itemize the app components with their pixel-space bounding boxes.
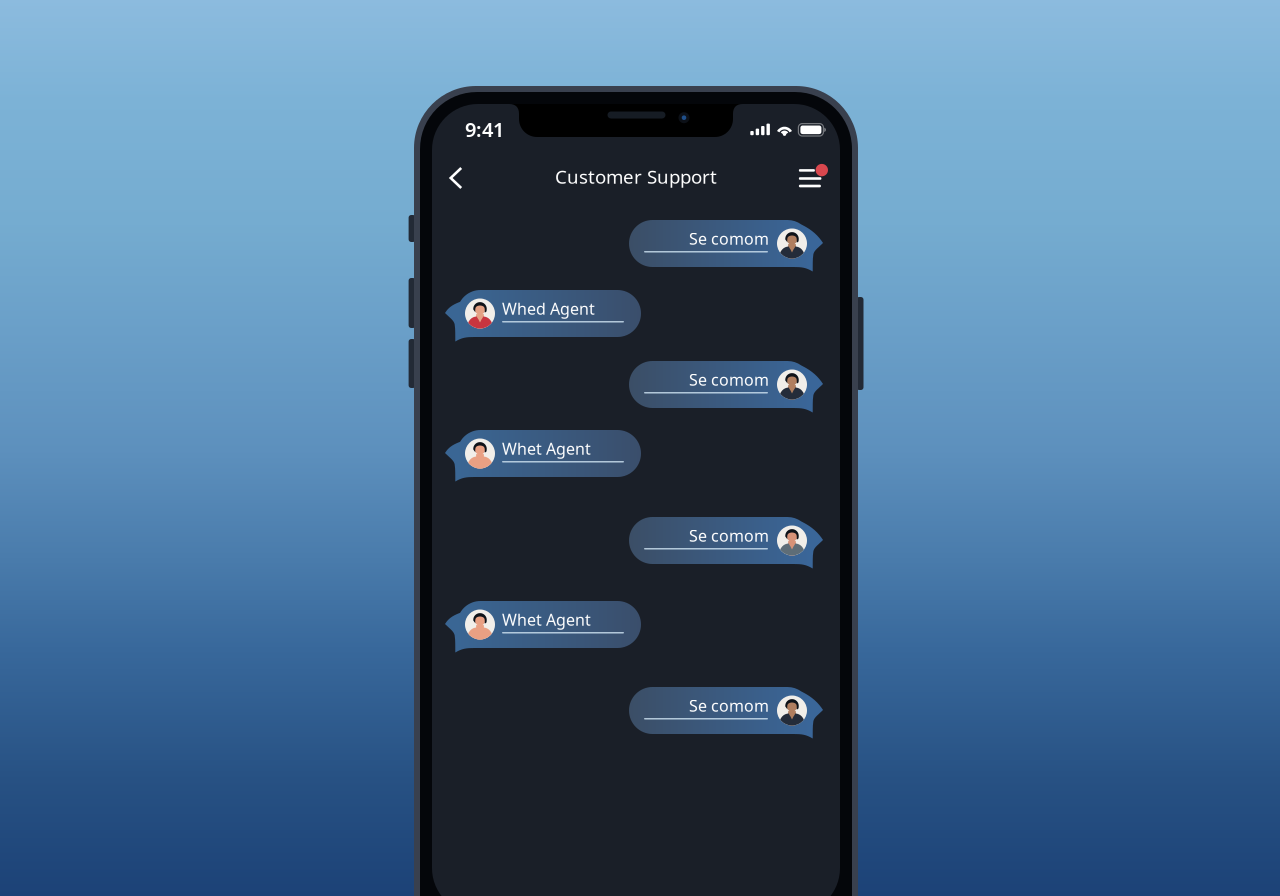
button[interactable]: Back	[437, 154, 476, 202]
staticText: Se comom	[689, 228, 769, 249]
staticText: Se comom	[689, 525, 769, 546]
staticText: 9:41	[465, 116, 504, 143]
staticText: Whet Agent	[502, 609, 591, 630]
button[interactable]: Menu	[785, 155, 842, 202]
staticText: Customer Support	[555, 164, 717, 189]
staticText: Se comom	[689, 369, 769, 390]
staticText: Whed Agent	[502, 298, 595, 319]
staticText: Whet Agent	[502, 438, 591, 459]
staticText: Se comom	[689, 695, 769, 716]
